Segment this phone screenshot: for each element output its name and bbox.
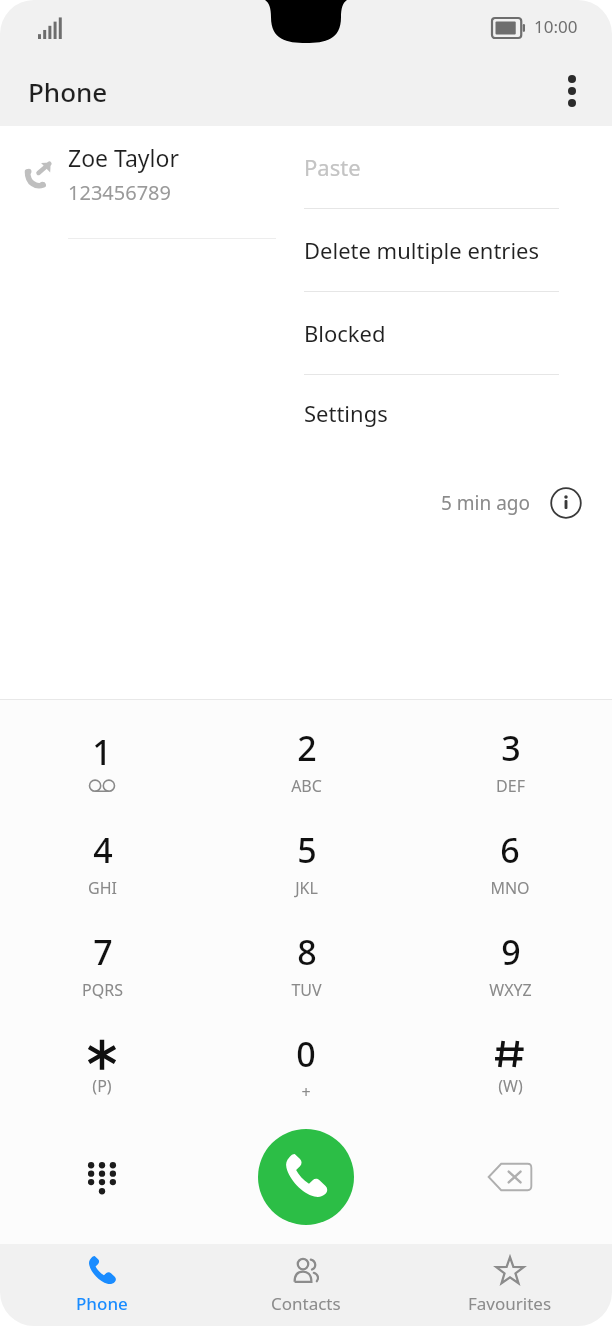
staticText: WXYZ xyxy=(489,979,532,1001)
staticText: (P) xyxy=(92,1075,112,1097)
staticText: 0 xyxy=(296,1031,316,1077)
staticText: Favourites xyxy=(468,1292,552,1315)
staticText: + xyxy=(301,1081,311,1103)
button[interactable]: 5 xyxy=(204,812,408,914)
staticText: Paste xyxy=(304,152,361,182)
staticText: 5 xyxy=(297,827,317,873)
staticText: 123456789 xyxy=(68,179,171,206)
staticText: MNO xyxy=(490,877,530,899)
staticText: DEF xyxy=(496,775,525,797)
button[interactable]: 7 xyxy=(0,914,204,1016)
staticText: Zoe Taylor xyxy=(68,142,179,173)
button[interactable]: 9 xyxy=(408,914,612,1016)
staticText: Delete multiple entries xyxy=(304,235,540,265)
staticText: ABC xyxy=(291,775,322,797)
staticText: JKL xyxy=(295,877,318,899)
button[interactable]: 2 xyxy=(204,710,408,812)
button[interactable]: Delete multiple entries xyxy=(276,209,587,291)
staticText: 7 xyxy=(93,929,113,975)
button[interactable]: Favourites xyxy=(408,1244,612,1326)
button[interactable]: More options xyxy=(544,63,600,119)
button[interactable]: Settings xyxy=(276,375,587,451)
staticText: GHI xyxy=(88,877,117,899)
button[interactable]: Dialpad xyxy=(0,1118,204,1236)
staticText: 3 xyxy=(501,725,521,771)
staticText: Phone xyxy=(76,1292,128,1315)
button[interactable]: Call details xyxy=(546,483,586,523)
button[interactable]: (P) xyxy=(0,1016,204,1118)
button[interactable]: 1 xyxy=(0,710,204,812)
staticText: Contacts xyxy=(271,1292,341,1315)
button[interactable]: Phone xyxy=(0,1244,204,1326)
staticText: PQRS xyxy=(82,979,123,1001)
staticText: Settings xyxy=(304,398,388,428)
button[interactable]: Paste xyxy=(276,126,587,208)
button[interactable]: 8 xyxy=(204,914,408,1016)
staticText: 1 xyxy=(92,729,112,775)
staticText: 6 xyxy=(500,827,520,873)
button[interactable]: 4 xyxy=(0,812,204,914)
staticText: Phone xyxy=(28,74,108,109)
staticText: 2 xyxy=(297,725,317,771)
staticText: 4 xyxy=(93,827,113,873)
button[interactable]: 6 xyxy=(408,812,612,914)
staticText: TUV xyxy=(291,979,322,1001)
button[interactable]: 3 xyxy=(408,710,612,812)
button[interactable]: Backspace xyxy=(408,1118,612,1236)
staticText: 9 xyxy=(501,929,521,975)
staticText: Blocked xyxy=(304,318,386,348)
staticText: 10:00 xyxy=(534,15,578,38)
staticText: (W) xyxy=(498,1075,523,1097)
button[interactable]: 0 xyxy=(204,1016,408,1118)
button[interactable]: (W) xyxy=(408,1016,612,1118)
button[interactable]: Zoe Taylor xyxy=(0,126,612,222)
staticText: 8 xyxy=(297,929,317,975)
button[interactable]: Contacts xyxy=(204,1244,408,1326)
button[interactable]: Call xyxy=(258,1129,354,1225)
staticText: 5 min ago xyxy=(441,490,530,516)
button[interactable]: Blocked xyxy=(276,292,587,374)
